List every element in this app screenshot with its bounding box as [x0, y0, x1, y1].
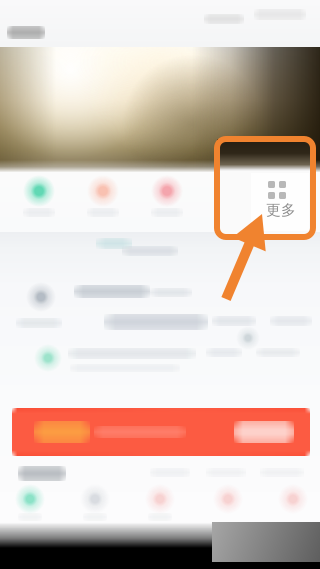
button[interactable]: 服务入口	[128, 456, 192, 528]
button[interactable]: 快捷入口	[80, 172, 160, 232]
button[interactable]: 服务入口	[64, 456, 128, 528]
button[interactable]: 快捷入口	[240, 172, 320, 232]
button[interactable]: 服务入口	[0, 456, 64, 528]
button[interactable]: 服务入口	[192, 456, 256, 528]
button[interactable]: 更多	[217, 139, 313, 237]
button[interactable]: 快捷入口	[0, 172, 80, 232]
staticText: 更多	[266, 201, 296, 219]
button[interactable]: 服务入口	[256, 456, 320, 528]
button[interactable]: 快捷入口	[160, 172, 240, 232]
button[interactable]	[0, 408, 320, 456]
